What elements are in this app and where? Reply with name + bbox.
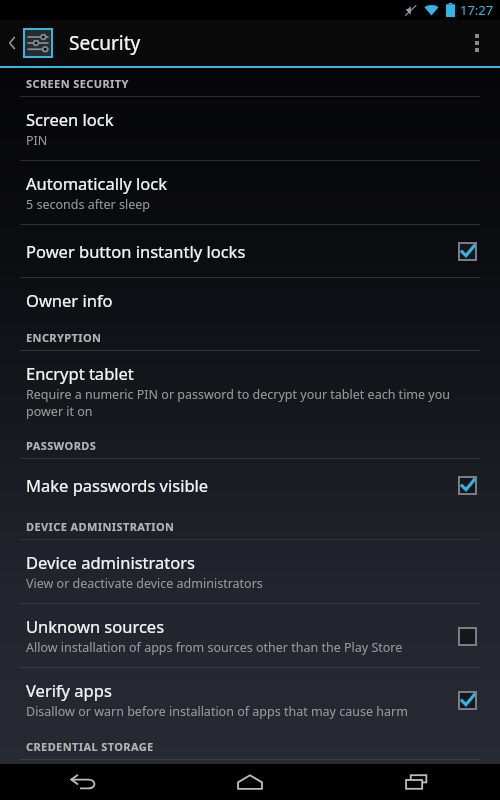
staticText: Automatically lock bbox=[26, 172, 167, 194]
button[interactable]: Checked bbox=[452, 470, 482, 500]
staticText: PASSWORDS bbox=[26, 438, 97, 453]
staticText: Disallow or warn before installation of … bbox=[26, 703, 408, 720]
staticText: Device administrators bbox=[26, 551, 195, 573]
button[interactable]: Verify apps bbox=[0, 668, 500, 731]
button[interactable]: Unchecked bbox=[452, 621, 482, 651]
staticText: Encrypt tablet bbox=[26, 362, 134, 384]
staticText: Power button instantly locks bbox=[26, 240, 246, 262]
staticText: Security bbox=[69, 30, 141, 56]
staticText: View or deactivate device administrators bbox=[26, 575, 263, 592]
staticText: Verify apps bbox=[26, 679, 112, 701]
button[interactable]: Encrypt tablet bbox=[0, 351, 500, 430]
button[interactable]: Home bbox=[166, 764, 333, 800]
staticText: Screen lock bbox=[26, 108, 114, 130]
button[interactable]: Automatically lock bbox=[0, 161, 500, 224]
button[interactable]: Checked bbox=[452, 685, 482, 715]
button[interactable]: Checked bbox=[452, 236, 482, 266]
button[interactable]: Unknown sources bbox=[0, 604, 500, 667]
staticText: SCREEN SECURITY bbox=[26, 76, 129, 91]
staticText: CREDENTIAL STORAGE bbox=[26, 739, 154, 754]
staticText: Allow installation of apps from sources … bbox=[26, 639, 403, 656]
button[interactable]: Device administrators bbox=[0, 540, 500, 603]
button[interactable]: Make passwords visible bbox=[0, 459, 500, 511]
staticText: 17:27 bbox=[460, 1, 494, 19]
staticText: 5 seconds after sleep bbox=[26, 196, 150, 213]
staticText: ENCRYPTION bbox=[26, 330, 102, 345]
button[interactable]: More options bbox=[454, 20, 500, 66]
button[interactable]: Power button instantly locks bbox=[0, 225, 500, 277]
button[interactable]: Screen lock bbox=[0, 97, 500, 160]
staticText: Owner info bbox=[26, 289, 113, 311]
button[interactable]: Back bbox=[0, 764, 166, 800]
button[interactable]: Recent apps bbox=[333, 764, 500, 800]
staticText: Make passwords visible bbox=[26, 474, 209, 496]
button[interactable]: Navigate up bbox=[0, 28, 57, 58]
staticText: Unknown sources bbox=[26, 615, 165, 637]
staticText: Require a numeric PIN or password to dec… bbox=[26, 386, 482, 419]
staticText: DEVICE ADMINISTRATION bbox=[26, 519, 175, 534]
staticText: PIN bbox=[26, 132, 48, 149]
button[interactable]: Owner info bbox=[0, 278, 500, 322]
